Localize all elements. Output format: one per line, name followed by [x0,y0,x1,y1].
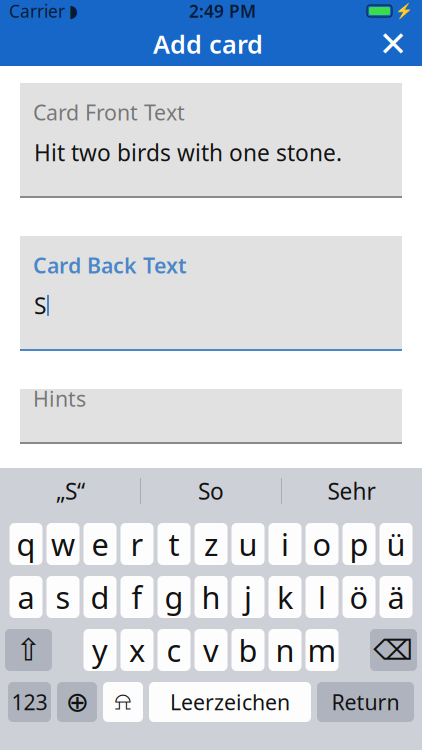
staticText: S [34,290,46,320]
staticText: x [129,630,145,670]
staticText: n [275,630,294,670]
staticText: k [277,577,293,617]
staticText: Card Front Text [33,98,185,126]
button[interactable]: e [83,523,116,565]
button[interactable]: q [9,523,42,565]
button[interactable]: m [305,629,338,671]
button[interactable]: Sehr [282,468,421,514]
staticText: Hit two birds with one stone. [34,137,342,167]
button[interactable]: l [305,576,338,618]
button[interactable]: Delete [370,629,417,671]
staticText: z [204,524,218,564]
staticText: Return [331,688,399,716]
button[interactable]: ü [379,523,412,565]
button[interactable]: i [268,523,301,565]
button[interactable]: b [231,629,264,671]
staticText: c [166,630,181,670]
button[interactable]: Close [370,22,416,66]
button[interactable]: s [46,576,79,618]
button[interactable]: 123 [8,682,51,722]
button[interactable]: j [231,576,264,618]
staticText: q [16,524,35,564]
staticText: m [307,630,336,670]
button[interactable]: p [342,523,375,565]
button[interactable]: z [194,523,227,565]
button[interactable]: h [194,576,227,618]
button[interactable]: d [83,576,116,618]
staticText: Hints [33,384,86,413]
staticText: o [312,524,331,564]
staticText: Carrier [9,0,65,22]
staticText: 2:49 PM [189,0,256,22]
staticText: g [164,577,183,617]
staticText: ⌫ [373,634,413,666]
button[interactable]: r [120,523,153,565]
button[interactable]: o [305,523,338,565]
staticText: ⚡ [395,3,413,19]
button[interactable]: v [194,629,227,671]
button[interactable]: w [46,523,79,565]
button[interactable]: Return [317,682,414,722]
staticText: Add card [153,27,263,61]
staticText: ⍾ [114,690,131,714]
staticText: ⇧ [15,633,41,667]
button[interactable]: „S“ [1,468,140,514]
staticText: 123 [11,688,47,716]
staticText: y [92,630,108,670]
staticText: ü [386,524,405,564]
button[interactable]: t [157,523,190,565]
button[interactable]: ö [342,576,375,618]
staticText: j [244,577,252,617]
button[interactable]: Next keyboard [57,682,97,722]
staticText: e [91,524,108,564]
staticText: v [203,630,219,670]
staticText: i [281,524,289,564]
staticText: r [130,524,143,564]
staticText: b [238,630,257,670]
staticText: Sehr [327,476,375,506]
button[interactable]: x [120,629,153,671]
staticText: a [17,577,34,617]
button[interactable]: Leerzeichen [149,682,311,722]
button[interactable]: Shift [5,629,52,671]
staticText: d [90,577,109,617]
staticText: Card Back Text [33,251,187,279]
staticText: ⊕ [65,686,88,718]
staticText: l [318,577,326,617]
button[interactable]: u [231,523,264,565]
staticText: ✕ [378,24,407,64]
button[interactable]: g [157,576,190,618]
staticText: ö [349,577,368,617]
button[interactable]: y [83,629,116,671]
staticText: ◗ [69,1,78,21]
staticText: s [55,577,70,617]
staticText: h [201,577,220,617]
button[interactable]: f [120,576,153,618]
staticText: p [349,524,368,564]
staticText: „S“ [56,476,85,506]
staticText: t [168,524,179,564]
staticText: u [238,524,257,564]
button[interactable]: c [157,629,190,671]
staticText: So [198,476,224,506]
staticText: f [131,577,142,617]
staticText: ä [387,577,404,617]
button[interactable]: ä [379,576,412,618]
button[interactable]: a [9,576,42,618]
staticText: w [51,524,75,564]
button[interactable]: So [141,468,281,514]
staticText: Leerzeichen [170,688,290,716]
button[interactable]: Dictation [103,682,143,722]
button[interactable]: n [268,629,301,671]
button[interactable]: k [268,576,301,618]
